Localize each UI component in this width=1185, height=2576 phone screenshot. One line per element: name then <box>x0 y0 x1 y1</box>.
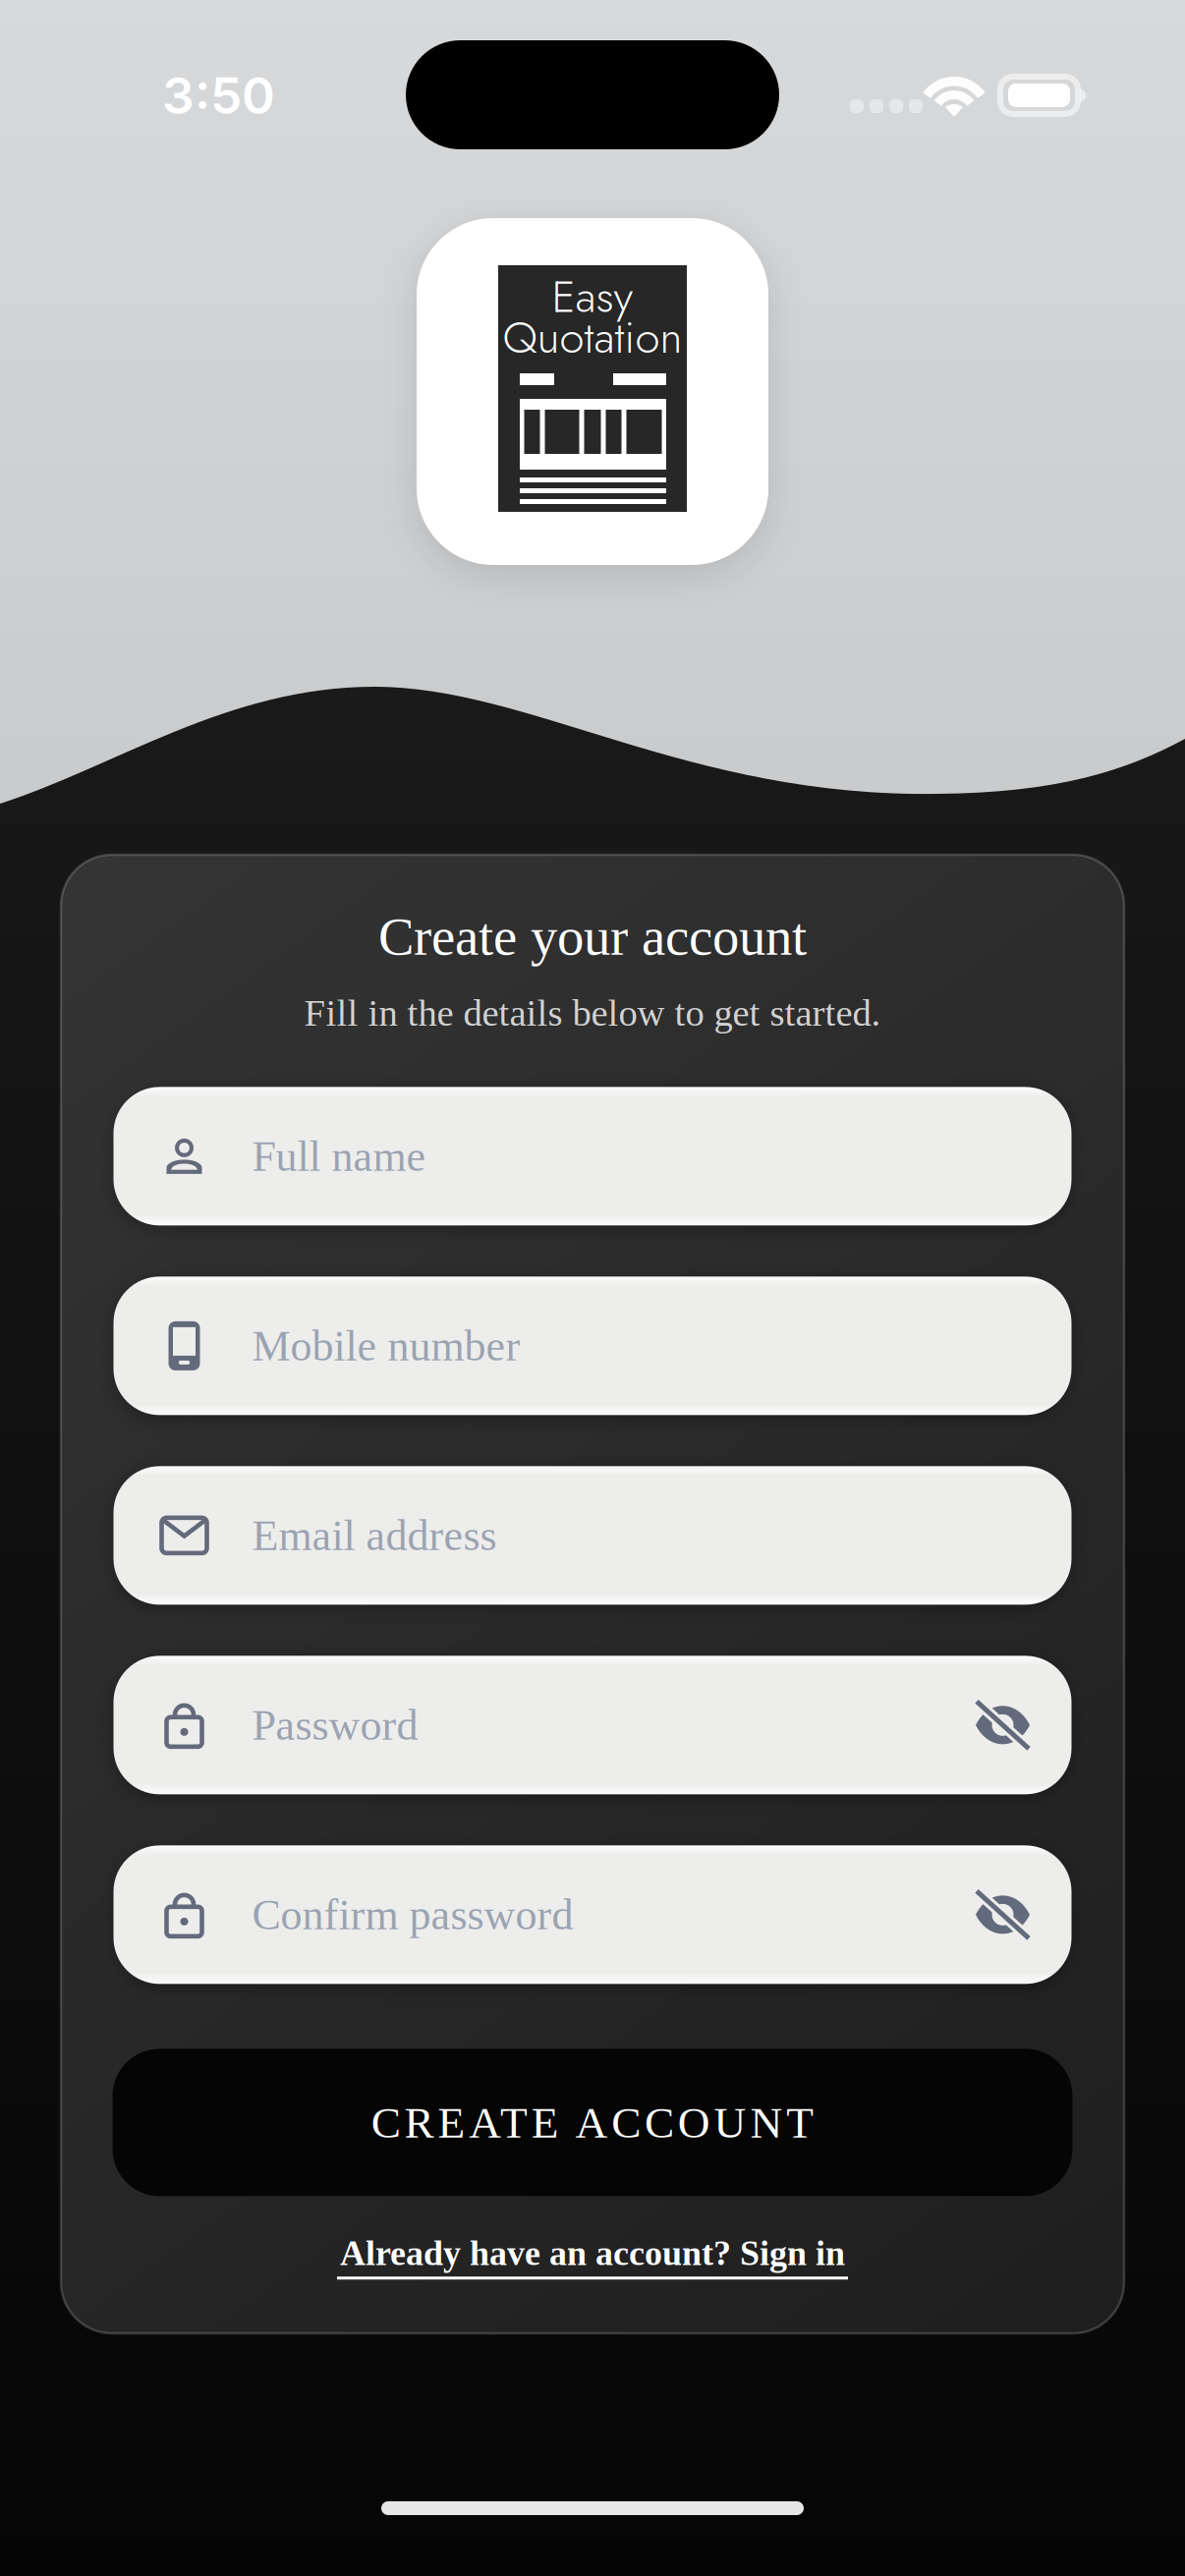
staticText: Email address <box>252 1512 497 1559</box>
button[interactable]: Already have an account? Sign in <box>337 2234 848 2280</box>
staticText: Mobile number <box>252 1322 520 1370</box>
button[interactable]: CREATE ACCOUNT <box>113 2049 1072 2196</box>
staticText: Create your account <box>378 907 807 966</box>
button[interactable]: Toggle password visibility <box>956 1845 1050 1984</box>
staticText: CREATE ACCOUNT <box>371 2098 814 2147</box>
button[interactable]: Email address <box>113 1466 1072 1605</box>
staticText: 3:50 <box>162 65 275 126</box>
button[interactable]: Full name <box>113 1087 1072 1226</box>
button[interactable]: Password <box>113 1656 1072 1794</box>
staticText: Quotation <box>503 305 682 369</box>
staticText: Password <box>252 1701 418 1749</box>
staticText: Already have an account? Sign in <box>340 2234 845 2273</box>
staticText: Easy <box>552 264 633 329</box>
staticText: Full name <box>252 1132 426 1180</box>
button[interactable]: Toggle password visibility <box>956 1656 1050 1794</box>
button[interactable]: Confirm password <box>113 1845 1072 1984</box>
staticText: Fill in the details below to get started… <box>304 992 881 1034</box>
button[interactable]: Mobile number <box>113 1277 1072 1415</box>
staticText: Confirm password <box>252 1891 573 1939</box>
